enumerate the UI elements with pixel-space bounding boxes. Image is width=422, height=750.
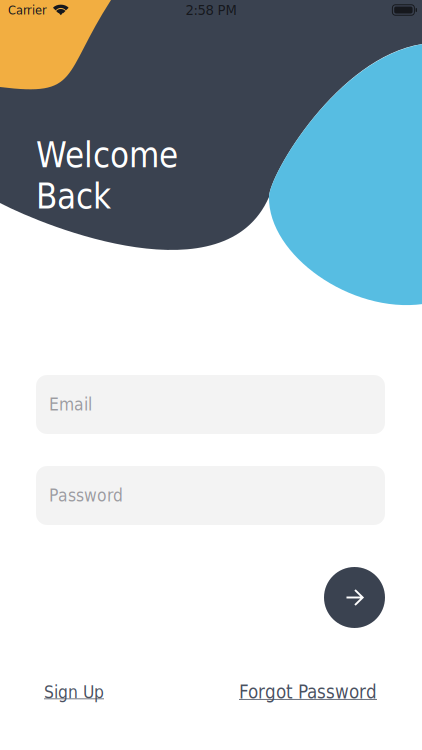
button[interactable]: Forgot Password bbox=[239, 681, 377, 703]
staticText: 2:58 PM bbox=[185, 1, 236, 19]
staticText: Sign Up bbox=[44, 682, 104, 702]
staticText: Welcome bbox=[36, 135, 178, 175]
staticText: Forgot Password bbox=[239, 681, 377, 703]
button[interactable]: Sign Up bbox=[44, 682, 104, 702]
staticText: Carrier bbox=[8, 3, 47, 17]
staticText: Password bbox=[49, 485, 123, 506]
staticText: Email bbox=[49, 394, 92, 415]
button[interactable]: Continue bbox=[324, 567, 385, 628]
staticText: Back bbox=[36, 176, 111, 217]
